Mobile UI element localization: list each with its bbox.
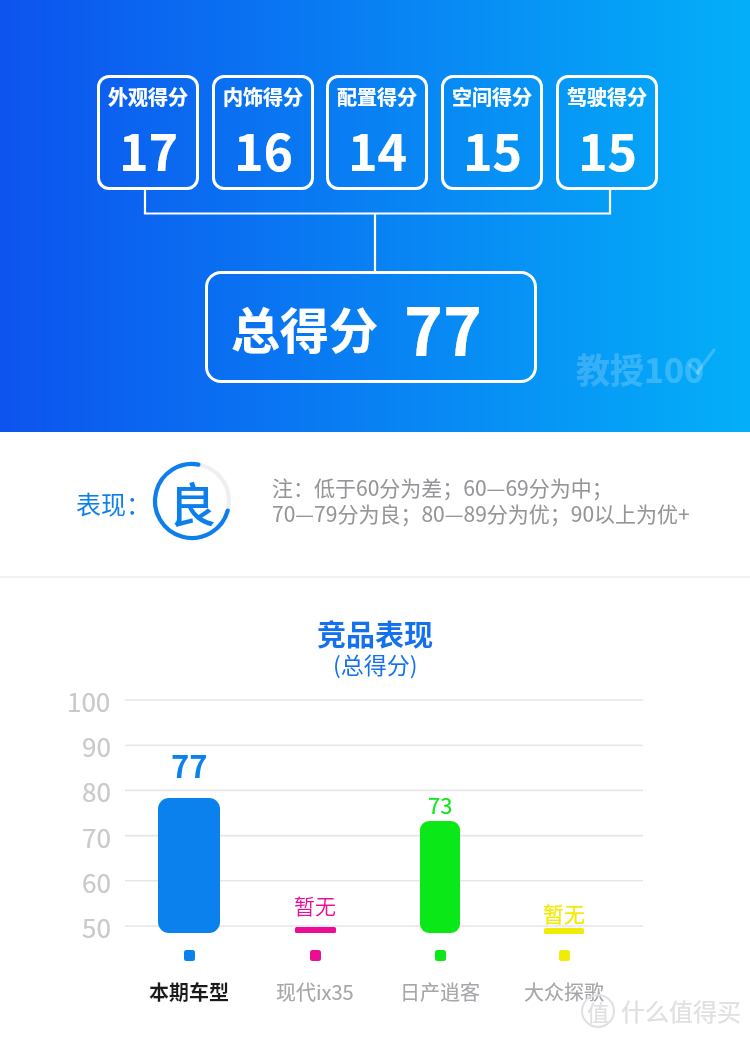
staticText: 总得分	[231, 292, 379, 363]
staticText: 70—79分为良；80—89分为优；90以上为优+	[272, 498, 690, 528]
staticText: 空间得分	[452, 82, 532, 111]
staticText: 60	[82, 863, 111, 901]
button[interactable]: 空间得分	[441, 75, 543, 190]
staticText: 配置得分	[337, 82, 417, 111]
button[interactable]: 外观得分	[97, 75, 199, 190]
button[interactable]: 日产逍客	[420, 821, 460, 933]
button[interactable]: 配置得分	[326, 75, 428, 190]
staticText: 50	[82, 908, 111, 946]
staticText: 注：低于60分为差；60—69分为中；	[272, 472, 613, 502]
staticText: 暂无	[543, 898, 585, 928]
staticText: 100	[67, 682, 111, 720]
button[interactable]: 现代ix35	[295, 927, 336, 933]
staticText: 外观得分	[108, 82, 188, 111]
staticText: 值	[587, 995, 610, 1027]
staticText: 15	[463, 113, 522, 185]
staticText: (总得分)	[333, 647, 418, 680]
staticText: 80	[82, 772, 111, 810]
staticText: 15	[578, 113, 637, 185]
staticText: 竞品表现	[317, 612, 434, 654]
button[interactable]: 内饰得分	[212, 75, 314, 190]
staticText: 73	[428, 788, 453, 820]
staticText: 日产逍客	[400, 977, 480, 1006]
staticText: 14	[348, 113, 407, 185]
staticText: 教授100	[576, 344, 705, 393]
staticText: 17	[119, 113, 178, 185]
staticText: 表现：	[76, 485, 152, 521]
staticText: 77	[404, 279, 482, 375]
staticText: 暂无	[294, 890, 336, 920]
staticText: 90	[82, 727, 111, 765]
staticText: 驾驶得分	[567, 82, 647, 111]
staticText: 77	[171, 742, 208, 787]
button[interactable]: 本期车型	[158, 798, 220, 933]
staticText: 本期车型	[149, 977, 229, 1006]
staticText: 内饰得分	[223, 82, 303, 111]
staticText: 70	[82, 818, 111, 856]
staticText: 现代ix35	[276, 977, 354, 1006]
staticText: 什么值得买	[621, 993, 741, 1028]
staticText: 16	[234, 113, 293, 185]
button[interactable]: 总得分	[205, 271, 537, 383]
button[interactable]: 驾驶得分	[556, 75, 658, 190]
staticText: 良	[169, 467, 216, 535]
staticText: 大众探歌	[524, 977, 604, 1006]
button[interactable]: 大众探歌	[544, 928, 584, 934]
